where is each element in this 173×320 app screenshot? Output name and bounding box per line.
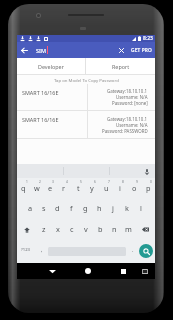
button[interactable]: 5	[71, 178, 85, 199]
staticText: 8:23	[143, 35, 153, 42]
button[interactable]: Report	[86, 58, 155, 75]
button[interactable]: 4	[57, 178, 71, 199]
staticText: 9	[136, 180, 138, 184]
staticText: 5	[80, 180, 82, 184]
button[interactable]: ?123	[17, 241, 35, 263]
button[interactable]: 6	[85, 178, 99, 199]
staticText: x	[56, 224, 60, 234]
button[interactable]: d	[50, 199, 64, 220]
staticText: 0	[150, 180, 152, 184]
staticText: q	[21, 183, 26, 193]
staticText: SMART 16/16E	[22, 116, 59, 123]
button[interactable]: m	[121, 220, 135, 241]
staticText: l	[140, 203, 142, 213]
staticText: u	[104, 183, 109, 193]
button[interactable]: Recent apps	[115, 263, 131, 279]
button[interactable]: v	[79, 220, 93, 241]
button[interactable]: Search	[139, 244, 153, 258]
button[interactable]: ,	[35, 241, 48, 263]
staticText: n	[112, 224, 117, 234]
button[interactable]: .	[126, 241, 139, 263]
button[interactable]: Shift	[17, 220, 37, 241]
staticText: j	[112, 203, 114, 213]
staticText: k	[125, 203, 129, 213]
staticText: a	[28, 203, 33, 213]
button[interactable]: 7	[99, 178, 113, 199]
staticText: Developer	[38, 63, 64, 70]
button[interactable]: Back	[44, 263, 60, 279]
staticText: 2	[39, 180, 41, 184]
button[interactable]: 1	[17, 178, 30, 199]
staticText: Gateway:18.10.10.1	[107, 116, 148, 122]
staticText: r	[62, 183, 66, 193]
button[interactable]: Clear text	[115, 42, 128, 58]
button[interactable]: b	[93, 220, 107, 241]
staticText: .	[132, 246, 134, 253]
button[interactable]: Home	[80, 263, 96, 279]
button[interactable]: Developer	[17, 58, 85, 75]
staticText: GET PRO	[131, 47, 152, 54]
staticText: Tap on Model To Copy Password	[54, 77, 119, 83]
staticText: i	[119, 183, 121, 193]
staticText: 8	[122, 180, 124, 184]
staticText: z	[42, 224, 46, 234]
staticText: s	[42, 203, 46, 213]
staticText: SMART 16/16E	[22, 89, 59, 96]
button[interactable]: Back	[17, 42, 32, 58]
button[interactable]: z	[37, 220, 51, 241]
staticText: g	[83, 203, 88, 213]
staticText: d	[55, 203, 60, 213]
button[interactable]: a	[24, 199, 37, 220]
button[interactable]: l	[134, 199, 148, 220]
staticText: 3	[52, 180, 54, 184]
staticText: y	[90, 183, 94, 193]
staticText: t	[77, 183, 80, 193]
button[interactable]: Switch keyboard	[137, 263, 153, 279]
button[interactable]: c	[65, 220, 79, 241]
button[interactable]: 0	[141, 178, 155, 199]
button[interactable]: SMART 16/16E	[17, 111, 155, 138]
staticText: Report	[112, 63, 130, 70]
staticText: Username: N/A	[116, 94, 148, 100]
button[interactable]: SMART 16/16E	[17, 84, 155, 110]
button[interactable]: 2	[30, 178, 43, 199]
button[interactable]: 8	[113, 178, 127, 199]
staticText: f	[70, 203, 73, 213]
staticText: b	[98, 224, 103, 234]
button[interactable]: Backspace	[135, 220, 155, 241]
staticText: v	[84, 224, 88, 234]
staticText: 7	[108, 180, 110, 184]
staticText: h	[97, 203, 102, 213]
staticText: m	[125, 224, 132, 234]
button[interactable]: j	[106, 199, 120, 220]
button[interactable]: s	[37, 199, 50, 220]
staticText: ?123	[21, 247, 31, 253]
button[interactable]: GET PRO	[128, 42, 155, 58]
button[interactable]: f	[64, 199, 78, 220]
button[interactable]: 9	[127, 178, 141, 199]
staticText: 6	[94, 180, 96, 184]
staticText: 1	[26, 180, 28, 184]
staticText: p	[146, 183, 151, 193]
button[interactable]: 3	[43, 178, 57, 199]
button[interactable]: x	[51, 220, 65, 241]
staticText: o	[132, 183, 137, 193]
button[interactable]: h	[92, 199, 106, 220]
staticText: ,	[41, 246, 43, 253]
staticText: SIM	[36, 47, 46, 54]
button[interactable]: n	[107, 220, 121, 241]
staticText: w	[34, 183, 40, 193]
staticText: Username: N/A	[116, 122, 148, 128]
staticText: Password: PASSWORD	[102, 128, 148, 134]
staticText: Gateway:18.10.10.1	[107, 88, 148, 94]
staticText: c	[70, 224, 74, 234]
staticText: e	[48, 183, 53, 193]
button[interactable]: k	[120, 199, 134, 220]
button[interactable]: g	[78, 199, 92, 220]
button[interactable]: Voice input	[142, 167, 151, 176]
staticText: 4	[66, 180, 68, 184]
staticText: Password: [none]	[112, 100, 148, 106]
